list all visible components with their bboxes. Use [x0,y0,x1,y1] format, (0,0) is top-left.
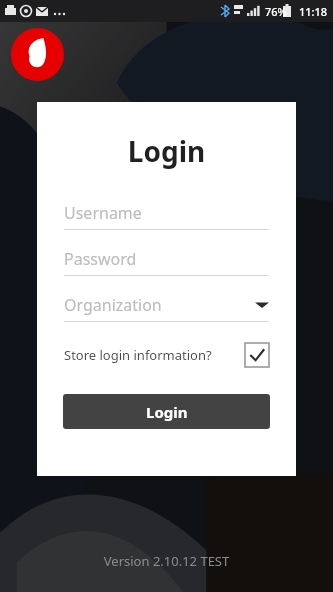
button[interactable]: Password [64,247,269,276]
staticText: 76% [265,4,287,19]
staticText: Username [64,202,142,224]
staticText: Password [64,248,137,270]
button[interactable]: Login [63,394,270,429]
button[interactable]: Username [64,201,269,230]
staticText: 11:18 [299,4,328,19]
staticText: Store login information? [64,346,212,364]
button[interactable]: Organization [64,293,269,322]
staticText: Login [146,402,188,422]
staticText: Version 2.10.12 TEST [0,552,333,570]
staticText: Login [37,132,296,170]
button[interactable]: Store login information? [64,343,269,367]
staticText: Organization [64,294,162,316]
other: Vodafone logo [11,28,64,81]
